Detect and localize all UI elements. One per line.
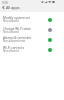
staticText: Change Wi-Fi state (3, 27, 53, 31)
button[interactable]: Wi-Fi control x (0, 45, 64, 55)
button[interactable]: Modify system set (0, 15, 64, 25)
button[interactable]: Back (0, 4, 6, 10)
staticText: Not allowed (3, 30, 53, 34)
button[interactable]: Change Wi-Fi state (0, 26, 64, 36)
staticText: Modify system set (3, 16, 53, 20)
staticText: Alarms & reminder (3, 36, 53, 40)
staticText: Not allowed now (3, 39, 53, 43)
staticText: Wi-Fi control x (3, 46, 53, 50)
staticText: Not allowed (3, 49, 53, 53)
staticText: 9:30 (2, 1, 8, 5)
button[interactable]: Alarms & reminder (0, 35, 64, 45)
staticText: Not allowed (3, 19, 53, 23)
staticText: All apps (6, 5, 20, 10)
